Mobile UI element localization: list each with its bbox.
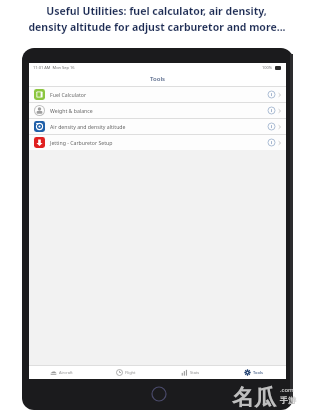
staticText: Air density and density altitude: [50, 123, 126, 130]
button[interactable]: Jetting - Carburetor Setup: [29, 135, 286, 150]
button[interactable]: Fuel Calculator: [29, 87, 286, 102]
button[interactable]: Flight: [94, 366, 158, 379]
staticText: Useful Utilities: fuel calculator, air d…: [46, 4, 267, 18]
button[interactable]: Info: [267, 106, 276, 115]
staticText: Tools: [253, 370, 264, 375]
staticText: 名瓜: [232, 384, 276, 412]
button[interactable]: Aircraft: [29, 366, 94, 379]
staticText: Fuel Calculator: [50, 91, 87, 98]
button[interactable]: Weight & balance: [29, 103, 286, 118]
staticText: Weight & balance: [50, 107, 93, 114]
button[interactable]: Info: [267, 90, 276, 99]
button[interactable]: Air density and density altitude: [29, 119, 286, 134]
button[interactable]: Info: [267, 138, 276, 147]
staticText: 100%: [262, 65, 273, 70]
staticText: Aircraft: [59, 370, 73, 375]
staticText: .com: [280, 386, 294, 394]
staticText: Stats: [190, 370, 200, 375]
staticText: Flight: [125, 370, 136, 375]
staticText: density altitude for adjust carburetor a…: [28, 20, 286, 34]
button[interactable]: Info: [267, 122, 276, 131]
staticText: 11:01 AM Mon Sep 16: [33, 65, 75, 70]
staticText: Jetting - Carburetor Setup: [50, 139, 113, 146]
staticText: Tools: [150, 75, 166, 83]
button[interactable]: Stats: [158, 366, 222, 379]
button[interactable]: Tools: [222, 366, 286, 379]
staticText: 手游: [280, 395, 296, 405]
